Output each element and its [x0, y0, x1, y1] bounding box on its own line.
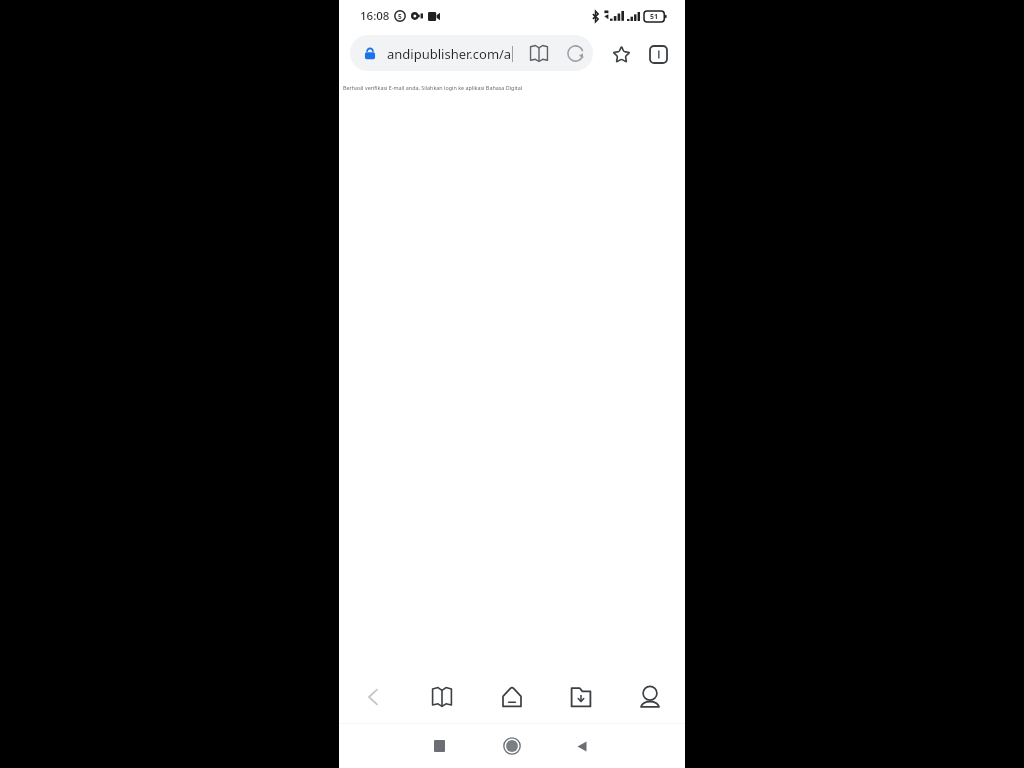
button[interactable]: Home — [490, 675, 534, 719]
button[interactable]: Bookmarks — [420, 675, 464, 719]
button[interactable]: Bookmark — [605, 38, 637, 70]
button[interactable]: Reload — [563, 41, 587, 65]
button[interactable]: Secure connection — [350, 35, 593, 71]
other: Secure connection — [364, 47, 376, 60]
button[interactable]: Back — [562, 726, 602, 766]
staticText: 16:08 — [360, 8, 390, 24]
button[interactable]: Downloads — [559, 675, 603, 719]
staticText: andipublisher.com/a — [387, 45, 512, 63]
button[interactable]: Back — [351, 675, 395, 719]
button[interactable]: Tabs — [642, 38, 674, 70]
staticText: 5 — [398, 12, 402, 21]
staticText: Berhasil verifikasi E-mail anda, Silahka… — [343, 84, 523, 91]
button[interactable]: Recent apps — [419, 726, 459, 766]
button[interactable]: Home — [492, 726, 532, 766]
button[interactable]: Reader mode — [527, 41, 551, 65]
button[interactable]: Profile — [628, 675, 672, 719]
staticText: 51 — [650, 12, 659, 22]
